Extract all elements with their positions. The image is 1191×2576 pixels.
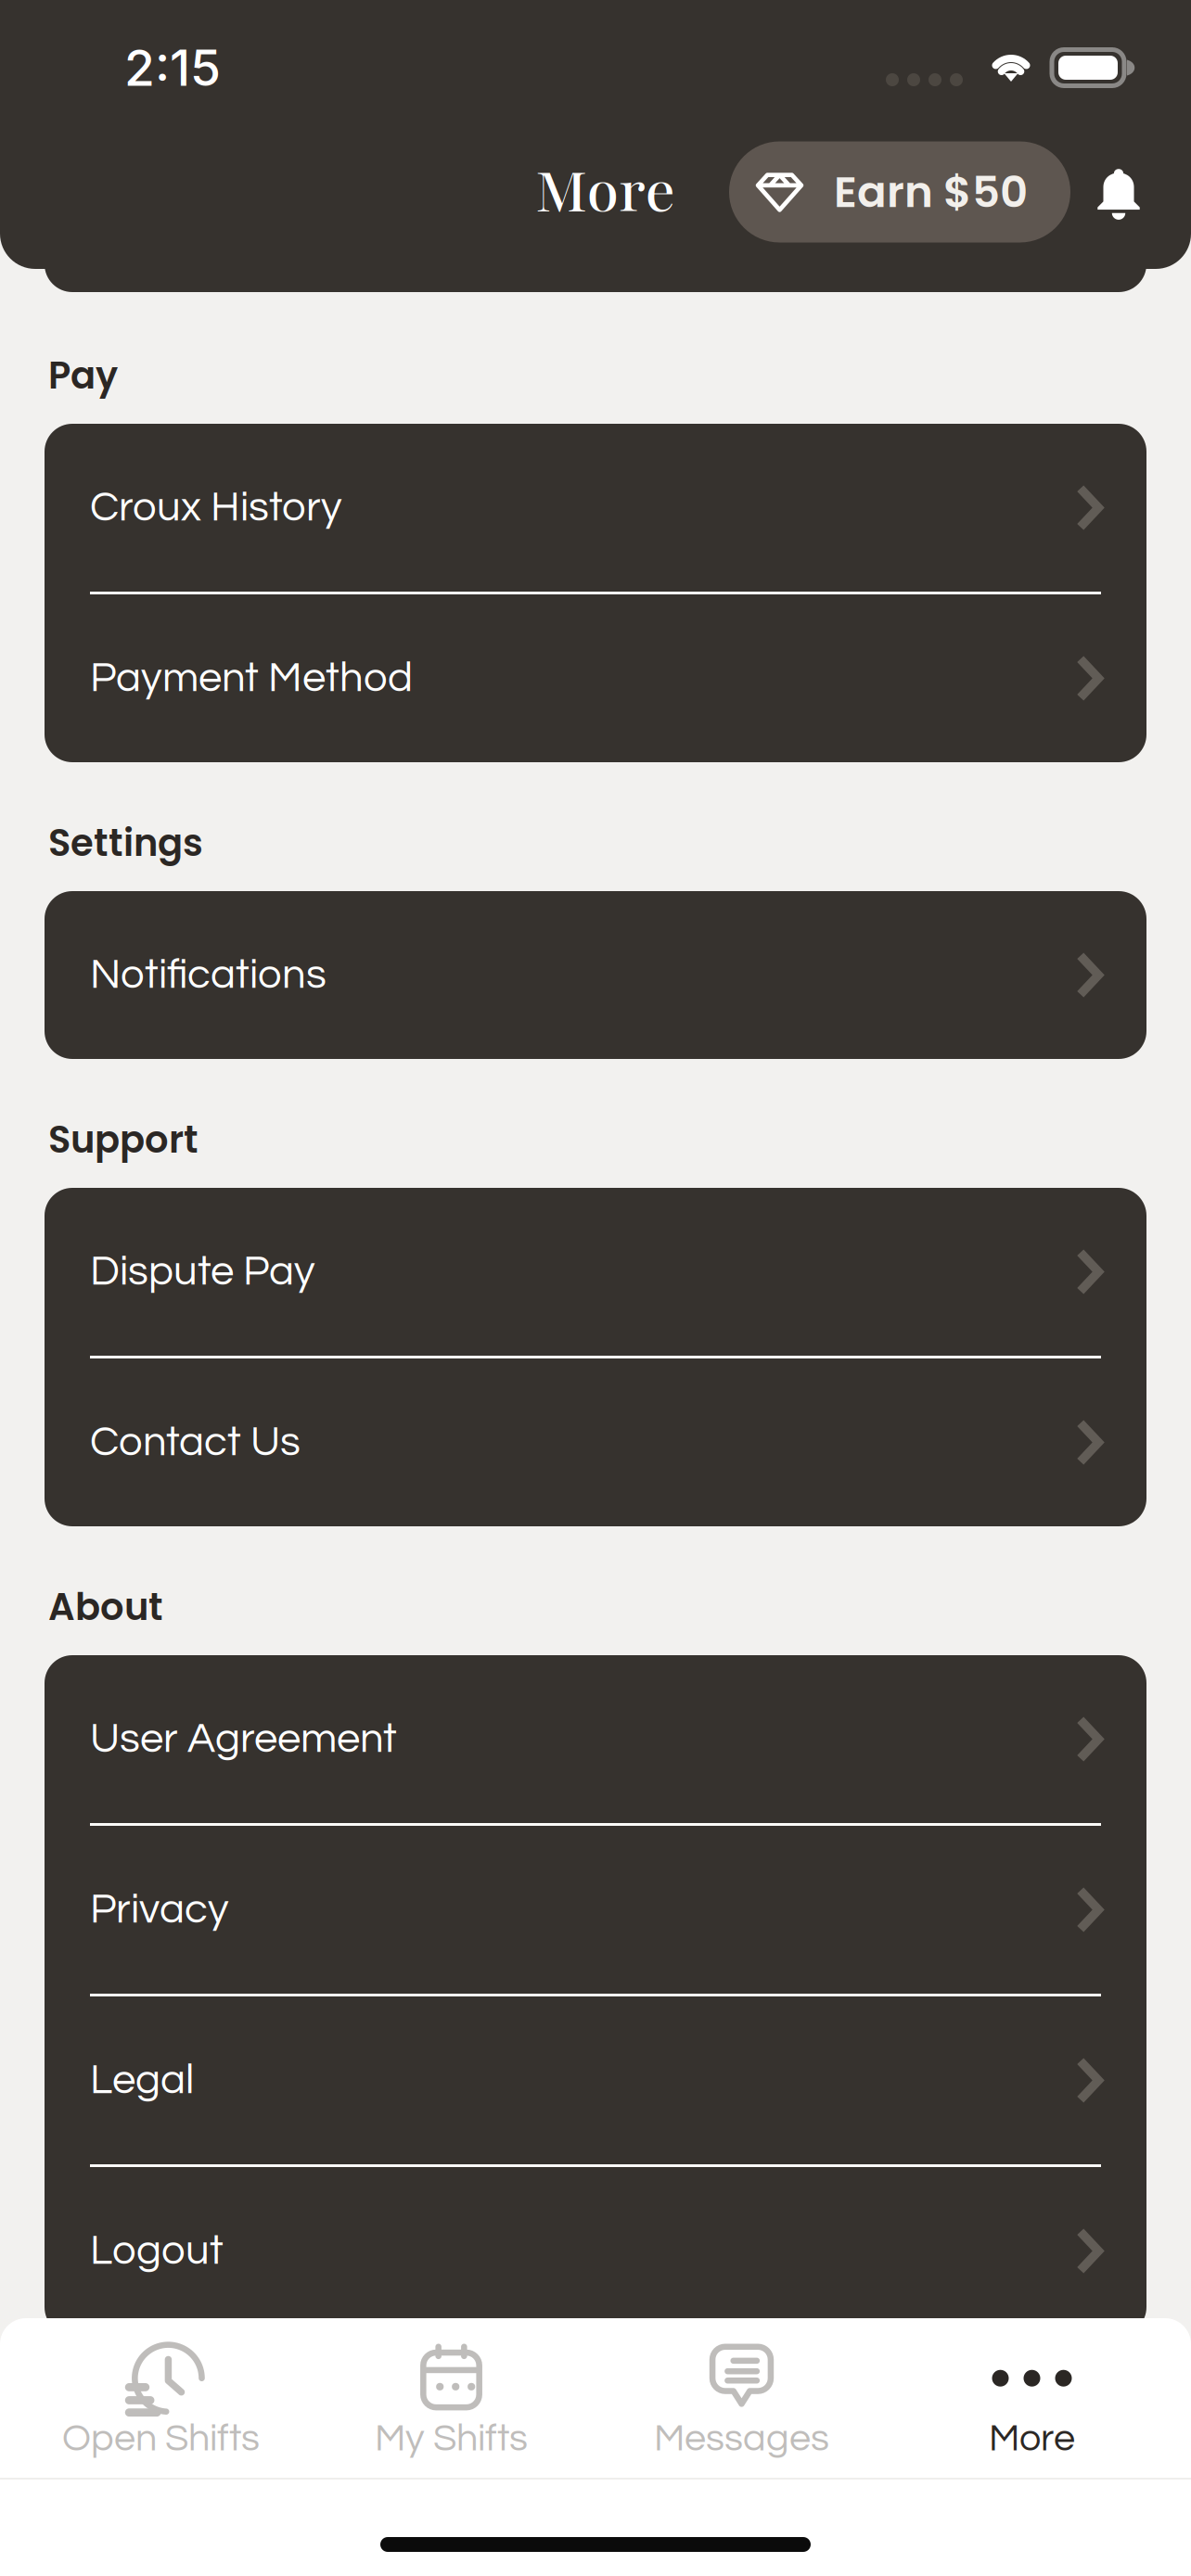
staticText: Pay bbox=[48, 350, 118, 402]
button[interactable]: Dispute Pay bbox=[45, 1188, 1146, 1356]
staticText: My Shifts bbox=[375, 2419, 528, 2459]
staticText: Contact Us bbox=[90, 1421, 301, 1464]
button[interactable]: Legal bbox=[45, 1996, 1146, 2164]
button[interactable]: Notifications bbox=[45, 891, 1146, 1059]
staticText: Open Shifts bbox=[62, 2419, 260, 2459]
staticText: About bbox=[48, 1581, 163, 1633]
button[interactable]: Notifications bbox=[1081, 154, 1157, 230]
button[interactable]: Open Shifts bbox=[16, 2318, 306, 2478]
button[interactable]: Earn $50 bbox=[729, 141, 1070, 242]
button[interactable]: Contact Us bbox=[45, 1358, 1146, 1526]
staticText: Notifications bbox=[90, 953, 327, 997]
staticText: Messages bbox=[654, 2419, 829, 2459]
staticText: More bbox=[989, 2419, 1075, 2459]
button[interactable]: Payment Method bbox=[45, 594, 1146, 762]
staticText: Logout bbox=[90, 2229, 224, 2273]
button[interactable]: Croux History bbox=[45, 424, 1146, 592]
staticText: User Agreement bbox=[90, 1718, 397, 1761]
button[interactable]: User Agreement bbox=[45, 1655, 1146, 1823]
staticText: Legal bbox=[90, 2059, 194, 2102]
staticText: Earn $50 bbox=[834, 162, 1028, 222]
button[interactable]: Messages bbox=[596, 2318, 887, 2478]
button[interactable]: Privacy bbox=[45, 1826, 1146, 1994]
staticText: Payment Method bbox=[90, 657, 413, 700]
button[interactable]: More bbox=[887, 2318, 1177, 2478]
button[interactable]: My Shifts bbox=[306, 2318, 596, 2478]
staticText: Settings bbox=[48, 817, 203, 869]
staticText: More bbox=[535, 152, 675, 232]
staticText: 2:15 bbox=[124, 38, 221, 98]
button[interactable]: Logout bbox=[45, 2167, 1146, 2335]
staticText: Privacy bbox=[90, 1888, 229, 1931]
staticText: Dispute Pay bbox=[90, 1250, 315, 1293]
staticText: Croux History bbox=[90, 486, 342, 529]
staticText: Support bbox=[48, 1114, 198, 1166]
